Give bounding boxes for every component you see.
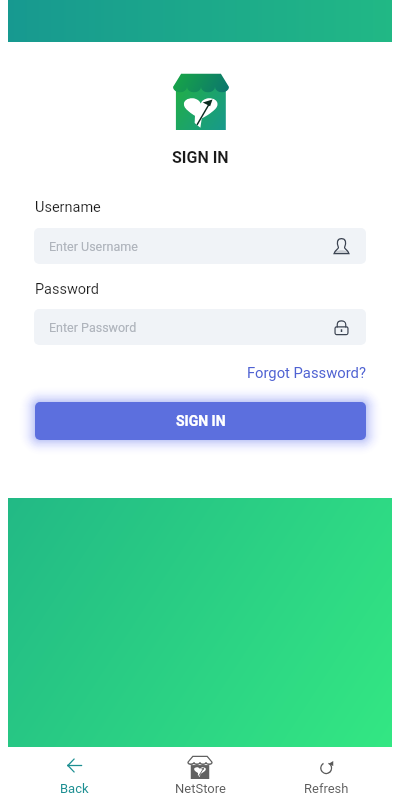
button[interactable]: Enter Username bbox=[34, 228, 366, 264]
staticText: NetStore bbox=[175, 781, 226, 796]
staticText: Username bbox=[35, 199, 101, 216]
staticText: Enter Password bbox=[49, 320, 333, 335]
other: Back bbox=[67, 758, 82, 773]
staticText: Password bbox=[35, 281, 100, 298]
button[interactable]: Back bbox=[11, 752, 137, 800]
staticText: SIGN IN bbox=[172, 148, 229, 167]
button[interactable]: Refresh bbox=[263, 752, 389, 800]
button[interactable]: Enter Password bbox=[34, 309, 366, 345]
staticText: Back bbox=[60, 781, 89, 796]
other: NetStore bbox=[188, 755, 212, 779]
other: Refresh bbox=[319, 760, 334, 775]
staticText: Forgot Password? bbox=[247, 364, 366, 381]
button[interactable]: SIGN IN bbox=[35, 402, 366, 440]
staticText: Refresh bbox=[304, 781, 349, 796]
staticText: Enter Username bbox=[49, 239, 333, 254]
button[interactable]: NetStore bbox=[137, 752, 263, 800]
staticText: SIGN IN bbox=[176, 413, 226, 429]
button[interactable]: Forgot Password? bbox=[247, 364, 366, 381]
